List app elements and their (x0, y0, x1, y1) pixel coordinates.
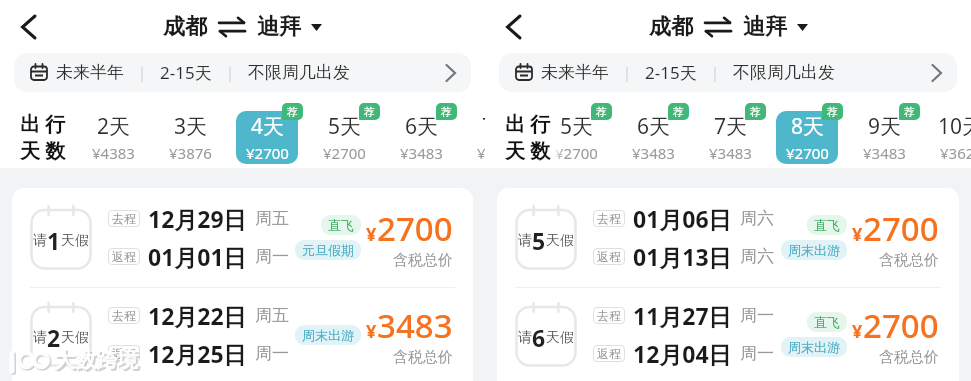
button[interactable]: 4天 (246, 112, 289, 163)
staticText: 2700 (863, 303, 939, 348)
staticText: ¥2700 (323, 143, 366, 163)
staticText: 周六 (740, 246, 774, 267)
staticText: 荐 (827, 105, 838, 119)
staticText: 出 行 (505, 110, 551, 137)
button[interactable] (12, 11, 44, 43)
staticText: 6天 (637, 112, 671, 141)
staticText: 不限周几出发 (733, 62, 835, 83)
staticText: 返程 (597, 346, 621, 361)
staticText: 大数跨境 (56, 349, 140, 375)
staticText: 请 (518, 232, 532, 250)
staticText: 荐 (364, 105, 375, 119)
button[interactable] (236, 111, 298, 164)
staticText: ¥ (852, 222, 863, 247)
staticText: 荐 (673, 105, 684, 119)
staticText: | (226, 63, 234, 82)
staticText: 3483 (377, 303, 453, 348)
staticText: 1 (47, 225, 61, 256)
staticText: 7天 (714, 112, 748, 141)
button[interactable]: 成都 (163, 13, 322, 41)
staticText: | (623, 63, 631, 82)
staticText: 2700 (863, 206, 939, 251)
button[interactable]: 2天 (92, 112, 135, 163)
staticText: 请 (33, 232, 47, 250)
staticText: 周六 (740, 208, 774, 229)
staticText: 周五 (255, 305, 289, 326)
button[interactable]: 3天 (169, 112, 212, 163)
staticText: 周末出游 (788, 242, 840, 258)
button[interactable]: 请 (497, 288, 959, 381)
staticText: 请 (518, 329, 532, 347)
staticText: ¥2700 (246, 143, 289, 163)
staticText: 成都 (163, 13, 207, 41)
button[interactable]: 6天 (632, 112, 675, 163)
button[interactable]: 8天 (786, 112, 829, 163)
staticText: 天假 (546, 329, 574, 347)
staticText: 去程 (112, 211, 136, 226)
staticText: 天假 (61, 232, 89, 250)
staticText: 未来半年 (56, 62, 124, 83)
staticText: 请 (33, 329, 47, 347)
staticText: 未来半年 (541, 62, 609, 83)
button[interactable]: 未来半年 (499, 53, 957, 92)
staticText: 11月27日 (633, 300, 732, 331)
staticText: ¥ (366, 222, 377, 247)
button[interactable]: 未来半年 (14, 53, 471, 92)
staticText: 直飞 (814, 217, 840, 233)
button[interactable]: 成都 (649, 13, 808, 41)
staticText: | (138, 63, 146, 82)
staticText: 荐 (441, 105, 452, 119)
staticText: ¥3483 (400, 143, 443, 163)
staticText: ¥3876 (169, 143, 212, 163)
staticText: ¥ (852, 319, 863, 344)
staticText: ¥3483 (709, 143, 752, 163)
staticText: 出 行 (20, 110, 66, 137)
staticText: 返程 (597, 249, 621, 264)
button[interactable] (776, 111, 838, 164)
staticText: 周一 (740, 305, 774, 326)
staticText: 荐 (596, 105, 607, 119)
staticText: 含税总价 (879, 251, 939, 270)
staticText: 6天 (405, 112, 439, 141)
button[interactable]: 7天 (709, 112, 752, 163)
staticText: 天 数 (505, 137, 551, 164)
button[interactable]: 请 (497, 188, 959, 287)
staticText: 不限周几出发 (248, 62, 350, 83)
staticText: 周一 (255, 343, 289, 364)
staticText: 直飞 (814, 314, 840, 330)
staticText: 荐 (904, 105, 915, 119)
staticText: 2 (47, 322, 61, 353)
staticText: 7天 (482, 112, 485, 141)
button[interactable] (497, 11, 529, 43)
staticText: 2天 (97, 112, 131, 141)
staticText: 周末出游 (788, 339, 840, 355)
staticText: 01月13日 (633, 241, 732, 272)
staticText: 天 数 (20, 137, 66, 164)
button[interactable]: 5天 (555, 112, 598, 163)
staticText: 9天 (868, 112, 902, 141)
button[interactable]: 5天 (323, 112, 366, 163)
staticText: 迪拜 (257, 13, 301, 41)
staticText: ¥ (366, 319, 377, 344)
staticText: 周一 (740, 343, 774, 364)
staticText: 含税总价 (879, 348, 939, 367)
button[interactable]: 9天 (863, 112, 906, 163)
staticText: 周末出游 (302, 327, 354, 343)
button[interactable]: 请 (12, 288, 473, 381)
staticText: 荐 (287, 105, 298, 119)
staticText: ¥2700 (555, 143, 598, 163)
staticText: 12月25日 (148, 338, 247, 369)
staticText: ¥3483 (632, 143, 675, 163)
staticText: 荐 (750, 105, 761, 119)
staticText: 8天 (791, 112, 825, 141)
staticText: 2700 (377, 206, 453, 251)
button[interactable]: 10天 (938, 112, 971, 163)
staticText: 01月06日 (633, 203, 732, 234)
staticText: 大数跨境 (54, 347, 138, 373)
button[interactable]: 6天 (400, 112, 443, 163)
staticText: 5 (532, 225, 546, 256)
button[interactable]: 7天 (477, 112, 485, 163)
staticText: 4天 (251, 112, 285, 141)
button[interactable]: 请 (12, 188, 473, 287)
staticText: ¥3483 (863, 143, 906, 163)
